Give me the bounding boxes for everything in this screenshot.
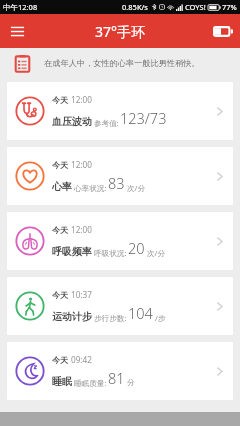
staticText: 今天 <box>52 95 69 105</box>
staticText: 0.85K/s <box>122 2 148 12</box>
button[interactable]: 今天 <box>7 277 233 335</box>
button[interactable]: 今天 <box>7 342 233 400</box>
staticText: 09:42 <box>71 354 92 365</box>
staticText: 呼吸频率 <box>52 245 92 258</box>
staticText: 参考值: <box>94 118 119 128</box>
staticText: 今天 <box>52 160 69 170</box>
staticText: /步 <box>155 313 166 323</box>
staticText: 运动计步 <box>52 310 92 323</box>
staticText: 中午12:08 <box>3 2 38 12</box>
staticText: 20 <box>128 238 145 258</box>
staticText: 12:00 <box>71 159 92 170</box>
staticText: 77% <box>222 2 237 12</box>
button[interactable]: 今天 <box>7 147 233 205</box>
staticText: 37°手环 <box>95 22 146 41</box>
staticText: 心率 <box>52 180 72 193</box>
staticText: 睡眠 <box>52 375 72 388</box>
staticText: 分 <box>127 378 135 388</box>
staticText: 步行步数: <box>94 313 127 323</box>
staticText: 次/分 <box>127 183 146 193</box>
staticText: 12:00 <box>71 94 92 105</box>
staticText: 83 <box>108 173 125 193</box>
staticText: 今天 <box>52 355 69 365</box>
staticText: 睡眠质量: <box>74 378 107 388</box>
staticText: COYS! <box>185 2 206 12</box>
staticText: 今天 <box>52 225 69 235</box>
staticText: 12:00 <box>71 224 92 235</box>
staticText: 心率状况: <box>74 183 107 193</box>
staticText: 在成年人中，女性的心率一般比男性稍快。 <box>44 58 200 68</box>
staticText: 81 <box>108 368 125 388</box>
button[interactable]: 今天 <box>7 212 233 270</box>
staticText: 10:37 <box>71 289 92 300</box>
button[interactable]: 在成年人中，女性的心率一般比男性稍快。 <box>0 48 240 78</box>
staticText: 104 <box>128 303 153 323</box>
staticText: 血压波动 <box>52 115 92 128</box>
button[interactable]: Menu <box>0 14 34 48</box>
staticText: 123/73 <box>120 108 167 128</box>
staticText: 呼吸状况: <box>94 248 127 258</box>
staticText: 次/分 <box>147 248 166 258</box>
staticText: 今天 <box>52 290 69 300</box>
button[interactable]: Battery status <box>206 14 240 48</box>
button[interactable]: 今天 <box>7 82 233 140</box>
